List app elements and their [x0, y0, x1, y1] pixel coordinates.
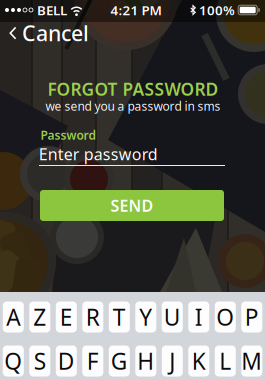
staticText: P	[245, 302, 259, 332]
button[interactable]: J	[162, 345, 183, 376]
button[interactable]: I	[188, 301, 209, 332]
staticText: J	[169, 346, 175, 376]
staticText: K	[192, 346, 206, 376]
staticText: we send you a password in sms	[45, 98, 220, 114]
button[interactable]: L	[215, 345, 236, 376]
button[interactable]: T	[109, 301, 130, 332]
staticText: L	[219, 346, 231, 376]
button[interactable]: R	[82, 301, 103, 332]
staticText: D	[58, 346, 75, 376]
staticText: R	[86, 302, 100, 332]
button[interactable]: M	[241, 345, 262, 376]
button[interactable]: A	[3, 301, 24, 332]
staticText: Password	[40, 127, 96, 143]
button[interactable]: Q	[3, 345, 24, 376]
staticText: Y	[139, 302, 152, 332]
staticText: BELL	[37, 1, 67, 19]
staticText: U	[164, 302, 181, 332]
staticText: T	[113, 302, 126, 332]
button[interactable]: K	[188, 345, 209, 376]
staticText: 4:21 PM	[110, 1, 161, 19]
staticText: Enter password	[39, 143, 158, 165]
staticText: H	[137, 346, 154, 376]
staticText: M	[241, 346, 262, 376]
button[interactable]: G	[109, 345, 130, 376]
button[interactable]: U	[162, 301, 183, 332]
staticText: S	[34, 346, 46, 376]
button[interactable]: Y	[135, 301, 156, 332]
button[interactable]: O	[215, 301, 236, 332]
button[interactable]: F	[82, 345, 103, 376]
staticText: F	[87, 346, 99, 376]
staticText: E	[60, 302, 73, 332]
button[interactable]: H	[135, 345, 156, 376]
staticText: G	[111, 346, 128, 376]
button[interactable]: E	[56, 301, 77, 332]
staticText: Cancel	[22, 19, 89, 47]
staticText: SEND	[110, 195, 153, 216]
button[interactable]: Cancel	[0, 20, 99, 46]
button[interactable]: D	[56, 345, 77, 376]
staticText: O	[216, 302, 234, 332]
staticText: Q	[4, 346, 22, 376]
staticText: 100%	[199, 1, 235, 19]
staticText: FORGOT PASSWORD	[47, 77, 218, 100]
button[interactable]: SEND	[40, 190, 224, 221]
staticText: A	[6, 302, 20, 332]
staticText: Z	[33, 302, 46, 332]
button[interactable]: P	[241, 301, 262, 332]
staticText: I	[195, 302, 203, 332]
button[interactable]: S	[29, 345, 50, 376]
button[interactable]: Z	[29, 301, 50, 332]
